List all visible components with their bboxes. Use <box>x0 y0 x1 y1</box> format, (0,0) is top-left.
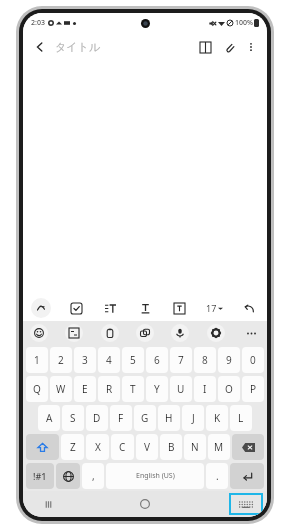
button[interactable]: N <box>184 434 206 460</box>
button[interactable]: H <box>158 405 180 431</box>
button[interactable]: I <box>194 376 216 402</box>
button[interactable]: Enter <box>230 463 264 489</box>
staticText: H <box>165 411 173 425</box>
button[interactable]: M <box>208 434 230 460</box>
button[interactable]: 3 <box>74 347 96 373</box>
button[interactable]: Z <box>61 434 84 460</box>
staticText: M <box>214 440 224 454</box>
button[interactable]: 2 <box>50 347 72 373</box>
staticText: B <box>168 440 175 454</box>
button[interactable]: Q <box>26 376 48 402</box>
button[interactable]: Y <box>146 376 168 402</box>
button[interactable]: Text style <box>135 298 155 318</box>
staticText: D <box>93 411 101 425</box>
button[interactable]: Undo <box>239 298 259 318</box>
staticText: , <box>92 469 95 483</box>
staticText: 9 <box>226 353 232 367</box>
staticText: X <box>95 440 101 454</box>
staticText: S <box>70 411 76 425</box>
button[interactable]: Emoji <box>30 324 48 342</box>
button[interactable]: Hide keyboard <box>231 493 253 515</box>
button[interactable]: E <box>74 376 96 402</box>
staticText: N <box>191 440 199 454</box>
button[interactable]: Pen <box>31 298 51 318</box>
button[interactable]: O <box>218 376 240 402</box>
staticText: V <box>144 440 150 454</box>
button[interactable]: R <box>98 376 120 402</box>
button[interactable]: !#1 <box>26 463 54 489</box>
staticText: U <box>177 382 185 396</box>
button[interactable]: C <box>111 434 134 460</box>
button[interactable]: Checklist <box>66 298 86 318</box>
button[interactable]: Change language <box>56 463 80 489</box>
button[interactable]: Backspace <box>232 434 264 460</box>
staticText: Z <box>70 440 76 454</box>
button[interactable]: Text box <box>169 298 189 318</box>
button[interactable]: Back <box>29 36 51 58</box>
staticText: O <box>225 382 233 396</box>
button[interactable]: V <box>136 434 158 460</box>
button[interactable]: W <box>50 376 72 402</box>
button[interactable]: English (US) <box>106 463 204 489</box>
staticText: E <box>82 382 88 396</box>
staticText: F <box>118 411 124 425</box>
button[interactable]: . <box>206 463 228 489</box>
button[interactable]: Translate <box>65 324 83 342</box>
staticText: English (US) <box>136 471 175 481</box>
staticText: L <box>238 411 244 425</box>
staticText: J <box>192 411 195 425</box>
button[interactable]: G <box>134 405 156 431</box>
staticText: 2 <box>58 353 64 367</box>
button[interactable]: J <box>182 405 204 431</box>
staticText: 2:03 <box>31 18 45 28</box>
button[interactable]: More options <box>241 37 261 57</box>
button[interactable]: K <box>206 405 228 431</box>
button[interactable]: X <box>86 434 109 460</box>
staticText: Y <box>154 382 160 396</box>
button[interactable]: 5 <box>122 347 144 373</box>
staticText: K <box>214 411 221 425</box>
button[interactable]: F <box>110 405 132 431</box>
button[interactable]: Stickers <box>136 324 154 342</box>
button[interactable]: Paragraph <box>100 298 120 318</box>
button[interactable]: Reading mode <box>193 35 217 59</box>
button[interactable]: 7 <box>170 347 192 373</box>
button[interactable]: L <box>230 405 252 431</box>
staticText: . <box>216 469 219 483</box>
button[interactable]: Keyboard settings <box>207 324 225 342</box>
button[interactable]: U <box>170 376 192 402</box>
button[interactable]: 8 <box>194 347 216 373</box>
button[interactable]: Show keyboard <box>231 495 261 513</box>
staticText: タイトル <box>55 40 101 54</box>
staticText: A <box>46 411 53 425</box>
button[interactable]: Home <box>134 493 156 515</box>
button[interactable]: P <box>242 376 264 402</box>
button[interactable]: , <box>82 463 104 489</box>
button[interactable]: Recents <box>37 493 59 515</box>
staticText: T <box>130 382 136 396</box>
button[interactable]: 6 <box>146 347 168 373</box>
button[interactable]: Shift <box>26 434 59 460</box>
button[interactable]: Voice input <box>171 324 189 342</box>
button[interactable]: 0 <box>242 347 264 373</box>
button[interactable]: 17 <box>204 302 225 314</box>
button[interactable]: Attach <box>217 35 241 59</box>
staticText: !#1 <box>33 470 47 482</box>
button[interactable]: S <box>62 405 84 431</box>
staticText: 4 <box>106 353 112 367</box>
button[interactable]: T <box>122 376 144 402</box>
staticText: 8 <box>202 353 208 367</box>
staticText: 1 <box>34 353 40 367</box>
staticText: 7 <box>178 353 184 367</box>
button[interactable]: D <box>86 405 108 431</box>
staticText: 3 <box>82 353 88 367</box>
button[interactable]: Clipboard <box>101 324 119 342</box>
staticText: P <box>250 382 257 396</box>
button[interactable]: A <box>38 405 60 431</box>
button[interactable]: More <box>242 324 260 342</box>
button[interactable]: 4 <box>98 347 120 373</box>
button[interactable]: 9 <box>218 347 240 373</box>
button[interactable]: B <box>160 434 182 460</box>
staticText: Q <box>33 382 41 396</box>
button[interactable]: 1 <box>26 347 48 373</box>
